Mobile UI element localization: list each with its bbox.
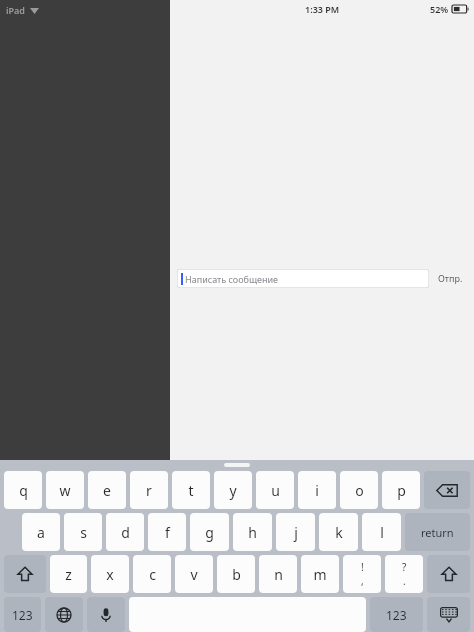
button[interactable]: k	[319, 513, 358, 551]
staticText: ,	[361, 574, 364, 588]
button[interactable]: Change language	[45, 597, 83, 632]
staticText: k	[335, 523, 343, 542]
button[interactable]: b	[217, 555, 255, 593]
staticText: m	[313, 565, 327, 584]
button[interactable]: Backspace	[424, 471, 470, 509]
staticText: t	[188, 481, 194, 500]
button[interactable]: i	[298, 471, 336, 509]
staticText: 123	[12, 607, 33, 623]
staticText: s	[80, 523, 87, 542]
staticText: return	[421, 525, 454, 540]
staticText: b	[232, 565, 241, 584]
staticText: v	[190, 565, 198, 584]
button[interactable]: ?	[385, 555, 423, 593]
staticText: l	[380, 523, 384, 542]
button[interactable]: q	[4, 471, 42, 509]
button[interactable]: z	[50, 555, 87, 593]
staticText: n	[274, 565, 283, 584]
staticText: u	[271, 481, 280, 500]
button[interactable]: m	[301, 555, 339, 593]
staticText: x	[106, 565, 114, 584]
button[interactable]: Shift	[427, 555, 470, 593]
button[interactable]: v	[175, 555, 213, 593]
staticText: !	[361, 560, 364, 574]
button[interactable]: r	[130, 471, 168, 509]
staticText: o	[355, 481, 364, 500]
button[interactable]: e	[88, 471, 126, 509]
staticText: h	[248, 523, 257, 542]
button[interactable]: Shift	[4, 555, 46, 593]
button[interactable]: l	[362, 513, 401, 551]
staticText: f	[165, 523, 170, 542]
button[interactable]: w	[46, 471, 84, 509]
staticText: r	[146, 481, 152, 500]
staticText: Написать сообщение	[185, 273, 279, 285]
staticText: iPad	[6, 4, 25, 16]
button[interactable]: u	[256, 471, 294, 509]
staticText: d	[121, 523, 130, 542]
button[interactable]: Hide keyboard	[427, 597, 470, 632]
staticText: ?	[402, 560, 407, 574]
button[interactable]: Dictation	[87, 597, 125, 632]
staticText: 1:33 PM	[305, 3, 340, 15]
button[interactable]: !	[343, 555, 381, 593]
staticText: q	[19, 481, 28, 500]
staticText: a	[37, 523, 45, 542]
button[interactable]: t	[172, 471, 210, 509]
button[interactable]: a	[22, 513, 60, 551]
button[interactable]: Написать сообщение	[177, 269, 429, 288]
button[interactable]: s	[64, 513, 102, 551]
button[interactable]: h	[233, 513, 272, 551]
button[interactable]: n	[259, 555, 297, 593]
button[interactable]: Отпр.	[429, 264, 471, 292]
staticText: i	[315, 481, 319, 500]
button[interactable]: p	[382, 471, 420, 509]
button[interactable]: y	[214, 471, 252, 509]
staticText: y	[229, 481, 237, 500]
staticText: Отпр.	[438, 272, 463, 284]
staticText: z	[65, 565, 72, 584]
staticText: p	[397, 481, 406, 500]
staticText: j	[294, 523, 298, 542]
button[interactable]: j	[276, 513, 315, 551]
staticText: w	[59, 481, 71, 500]
staticText: 123	[386, 607, 407, 623]
staticText: c	[149, 565, 156, 584]
staticText: .	[403, 574, 406, 588]
button[interactable]: d	[106, 513, 144, 551]
button[interactable]: 123	[4, 597, 41, 632]
button[interactable]: o	[340, 471, 378, 509]
button[interactable]: g	[190, 513, 229, 551]
staticText: 52%	[430, 3, 449, 15]
button[interactable]: 123	[370, 597, 423, 632]
staticText: e	[103, 481, 111, 500]
button[interactable]: c	[133, 555, 171, 593]
button[interactable]: f	[148, 513, 186, 551]
button[interactable]: return	[405, 513, 470, 551]
button[interactable]: x	[91, 555, 129, 593]
staticText: g	[205, 523, 214, 542]
